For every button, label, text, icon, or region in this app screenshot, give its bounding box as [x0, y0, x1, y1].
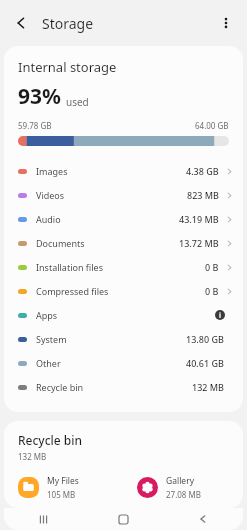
staticText: My Files: [47, 475, 79, 487]
staticText: used: [66, 95, 89, 109]
staticText: 823 MB: [187, 189, 219, 201]
button[interactable]: Recycle bin: [4, 375, 243, 399]
staticText: 40.61 GB: [186, 357, 224, 369]
staticText: 4.38 GB: [186, 165, 219, 177]
button[interactable]: Images: [4, 159, 243, 183]
staticText: 13.72 MB: [179, 237, 219, 249]
button[interactable]: Home: [83, 508, 163, 530]
staticText: 105 MB: [47, 489, 76, 500]
staticText: Apps: [36, 309, 58, 321]
staticText: 132 MB: [192, 381, 224, 393]
staticText: Recycle bin: [18, 432, 83, 448]
staticText: Gallery: [166, 475, 194, 487]
staticText: Internal storage: [18, 58, 117, 76]
button[interactable]: My Files: [4, 475, 123, 500]
staticText: Compressed files: [36, 285, 109, 297]
staticText: Other: [36, 357, 61, 369]
button[interactable]: Gallery: [123, 475, 243, 500]
staticText: 43.19 MB: [179, 213, 219, 225]
staticText: 0 B: [205, 285, 219, 297]
button[interactable]: More options: [209, 6, 243, 40]
button[interactable]: Back: [4, 6, 38, 40]
button[interactable]: Apps: [4, 303, 243, 327]
button[interactable]: Back: [163, 508, 243, 530]
staticText: 59.78 GB: [18, 120, 52, 131]
button[interactable]: Installation files: [4, 255, 243, 279]
staticText: Storage: [42, 14, 94, 33]
staticText: 27.08 MB: [166, 489, 201, 500]
button[interactable]: Videos: [4, 183, 243, 207]
button[interactable]: Documents: [4, 231, 243, 255]
button[interactable]: Compressed files: [4, 279, 243, 303]
staticText: System: [36, 333, 67, 345]
staticText: Installation files: [36, 261, 103, 273]
staticText: Videos: [36, 189, 65, 201]
staticText: 13.80 GB: [186, 333, 224, 345]
staticText: 0 B: [205, 261, 219, 273]
button[interactable]: System: [4, 327, 243, 351]
staticText: 64.00 GB: [195, 120, 229, 131]
button[interactable]: Audio: [4, 207, 243, 231]
button[interactable]: Recents: [4, 508, 83, 530]
staticText: Documents: [36, 237, 85, 249]
staticText: Images: [36, 165, 68, 177]
staticText: 132 MB: [18, 451, 47, 462]
staticText: 93%: [18, 82, 61, 111]
staticText: Audio: [36, 213, 61, 225]
staticText: Recycle bin: [36, 381, 84, 393]
button[interactable]: Other: [4, 351, 243, 375]
